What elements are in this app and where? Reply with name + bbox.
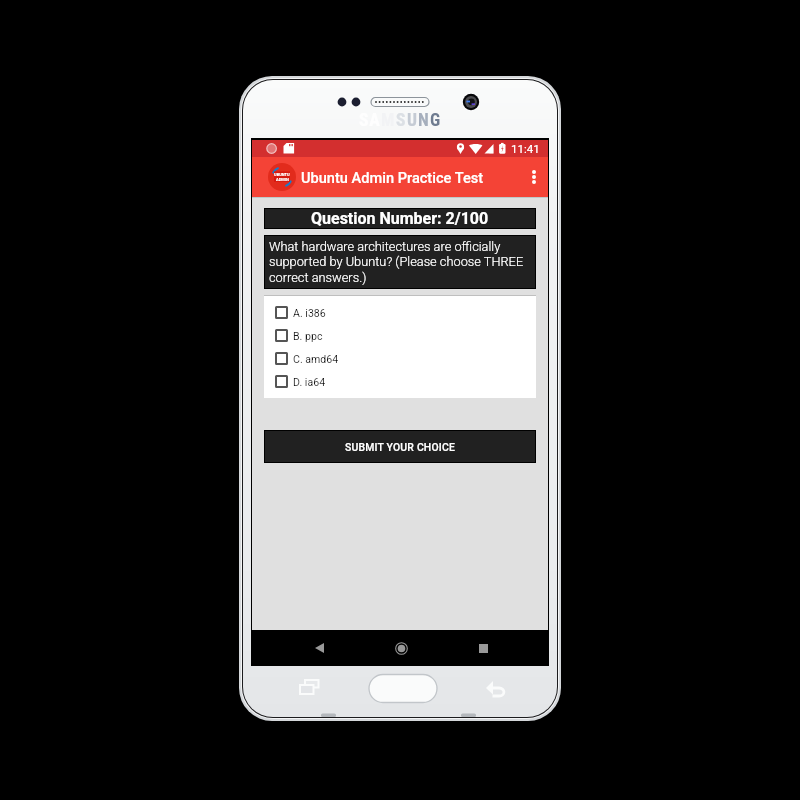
staticText: UBUNTU bbox=[274, 172, 290, 177]
staticText: C. amd64 bbox=[293, 353, 339, 365]
staticText: B. ppc bbox=[293, 330, 323, 342]
button[interactable]: Back bbox=[302, 631, 336, 665]
staticText: D. ia64 bbox=[293, 376, 326, 388]
staticText: Ubuntu Admin Practice Test bbox=[301, 169, 484, 186]
button[interactable]: More options bbox=[518, 161, 550, 193]
staticText: 11:41 bbox=[511, 142, 540, 155]
staticText: ADMIN bbox=[276, 177, 289, 182]
staticText: A. i386 bbox=[293, 307, 326, 319]
staticText: N bbox=[418, 110, 430, 131]
staticText: S bbox=[396, 110, 407, 131]
staticText: What hardware architectures are official… bbox=[269, 239, 531, 285]
staticText: U bbox=[407, 110, 418, 131]
staticText: SUBMIT YOUR CHOICE bbox=[345, 441, 455, 453]
staticText: G bbox=[430, 110, 442, 131]
button[interactable]: SUBMIT YOUR CHOICE bbox=[264, 430, 536, 463]
button[interactable]: D. ia64 bbox=[264, 370, 536, 393]
button[interactable]: A. i386 bbox=[264, 301, 536, 324]
button[interactable]: Recent apps bbox=[466, 631, 500, 665]
staticText: Question Number: 2/100 bbox=[311, 209, 489, 228]
button[interactable]: C. amd64 bbox=[264, 347, 536, 370]
button[interactable]: Home bbox=[384, 631, 418, 665]
button[interactable]: B. ppc bbox=[264, 324, 536, 347]
